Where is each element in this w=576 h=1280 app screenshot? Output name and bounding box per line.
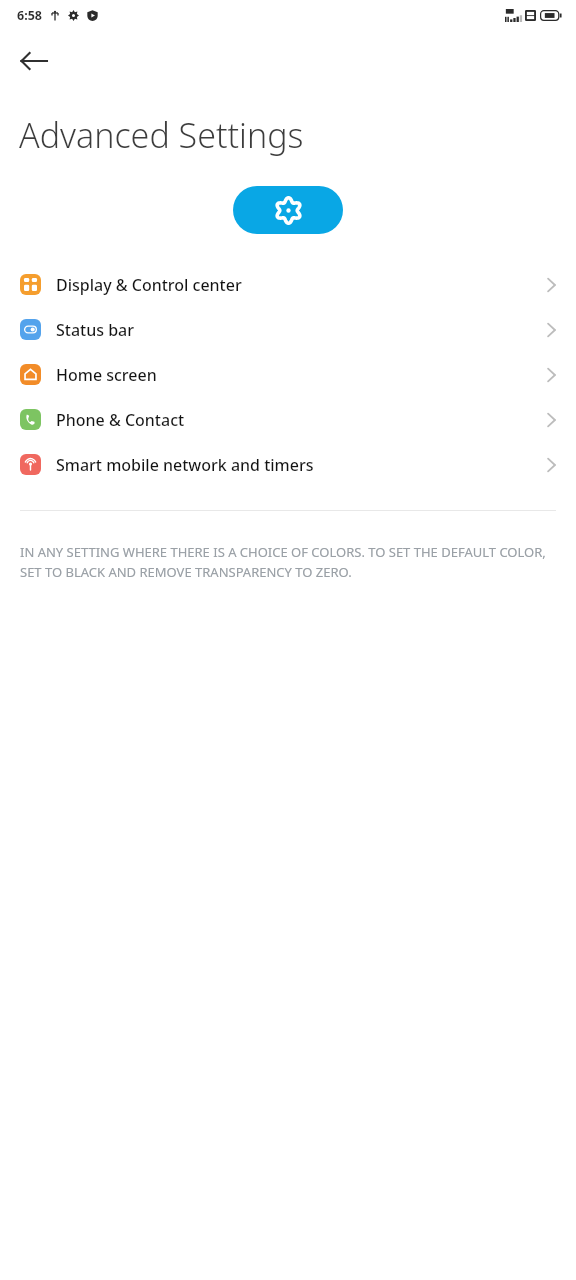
staticText: 6:58 <box>17 7 42 24</box>
button[interactable]: Phone & Contact <box>0 397 576 442</box>
button[interactable]: Back <box>12 39 56 83</box>
staticText: Smart mobile network and timers <box>56 454 314 476</box>
staticText: Display & Control center <box>56 274 242 296</box>
staticText: IN ANY SETTING WHERE THERE IS A CHOICE O… <box>20 543 556 581</box>
button[interactable]: Smart mobile network and timers <box>0 442 576 487</box>
button[interactable]: Status bar <box>0 307 576 352</box>
staticText: Status bar <box>56 319 135 341</box>
button[interactable]: Display & Control center <box>0 262 576 307</box>
button[interactable]: Settings <box>233 186 343 234</box>
staticText: Advanced Settings <box>19 112 304 158</box>
staticText: Phone & Contact <box>56 409 185 431</box>
button[interactable]: Home screen <box>0 352 576 397</box>
staticText: Home screen <box>56 364 157 386</box>
